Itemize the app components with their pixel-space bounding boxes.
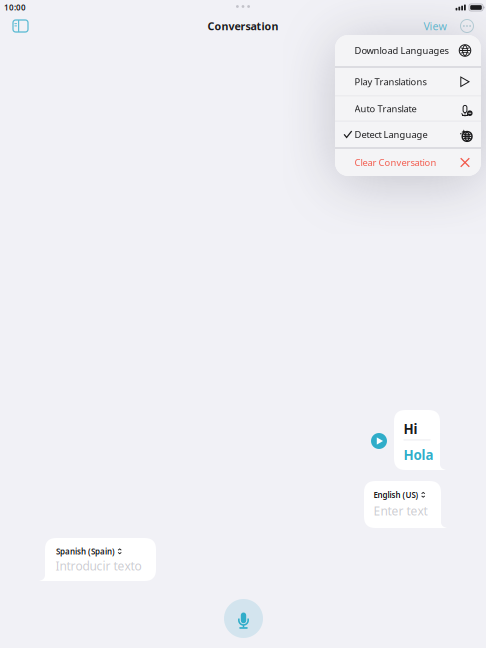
button[interactable]: Record [224,599,263,638]
button[interactable]: More options [457,16,477,36]
staticText: Enter text [373,503,427,519]
button[interactable]: Play Translations [335,68,481,95]
button[interactable]: Show Sidebar [7,15,33,37]
button[interactable]: View [418,15,452,37]
staticText: Clear Conversation [354,156,436,169]
staticText: Download Languages [354,44,448,57]
staticText: Auto Translate [354,102,416,115]
staticText: Hola [403,446,433,464]
button[interactable]: Auto Translate [335,96,481,121]
staticText: Hi [403,420,417,438]
staticText: Detect Language [354,128,427,141]
button[interactable]: Clear Conversation [335,149,481,176]
staticText: Spanish (Spain) [56,546,115,557]
button[interactable]: Detect Language [335,122,481,147]
staticText: Introducir texto [55,558,141,574]
button[interactable]: Download Languages [335,35,481,66]
staticText: 10:00 [4,2,26,13]
button[interactable]: Play translation [371,433,387,449]
staticText: View [423,19,446,33]
staticText: Play Translations [354,76,426,88]
staticText: Conversation [207,19,278,33]
staticText: English (US) [373,489,418,500]
